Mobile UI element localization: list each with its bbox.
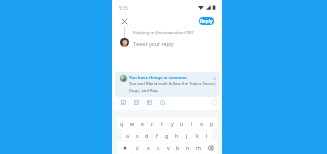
staticText: o (200, 120, 204, 127)
button[interactable]: j (182, 129, 192, 141)
staticText: m (196, 144, 201, 151)
staticText: u (180, 120, 184, 127)
button[interactable]: d (142, 129, 152, 141)
button[interactable]: e (137, 117, 147, 129)
button[interactable]: You have things in common (115, 72, 219, 97)
button[interactable]: a (122, 129, 132, 141)
staticText: f (156, 132, 158, 139)
button[interactable]: k (192, 129, 202, 141)
button[interactable]: Backspace (203, 141, 217, 154)
staticText: You have things in common (129, 75, 187, 81)
button[interactable]: n (183, 141, 193, 154)
button[interactable]: Add photo (119, 98, 128, 107)
staticText: v (167, 144, 170, 151)
button[interactable]: c (153, 141, 163, 154)
button[interactable]: z (132, 141, 143, 154)
button[interactable]: o (197, 117, 207, 129)
staticText: Replying to @mariapoulsen1987 (133, 30, 194, 35)
button[interactable]: q (117, 117, 127, 129)
button[interactable]: m (193, 141, 203, 154)
button[interactable]: v (163, 141, 173, 154)
staticText: i (191, 120, 193, 127)
button[interactable]: x (143, 141, 153, 154)
staticText: Reply (200, 18, 213, 24)
button[interactable]: y (167, 117, 177, 129)
button[interactable]: Dismiss (210, 74, 218, 82)
staticText: n (186, 144, 190, 151)
staticText: s (136, 132, 139, 139)
button[interactable]: Add location (158, 98, 167, 107)
button[interactable]: r (147, 117, 157, 129)
staticText: a (126, 132, 129, 139)
staticText: y (171, 120, 174, 127)
staticText: z (136, 144, 139, 151)
staticText: r (151, 120, 154, 127)
staticText: l (206, 132, 208, 139)
staticText: t (161, 120, 163, 127)
button[interactable]: t (157, 117, 167, 129)
button[interactable]: i (187, 117, 197, 129)
button[interactable]: Shift (117, 141, 132, 154)
button[interactable]: Close (118, 15, 131, 28)
staticText: 5:15 (119, 5, 128, 11)
button[interactable]: b (173, 141, 183, 154)
staticText: b (176, 144, 180, 151)
button[interactable]: s (132, 129, 142, 141)
button[interactable]: Character count (210, 98, 218, 106)
staticText: j (186, 132, 188, 139)
button[interactable]: w (127, 117, 137, 129)
staticText: x (147, 144, 150, 151)
button[interactable]: g (162, 129, 172, 141)
staticText: p (210, 120, 214, 127)
staticText: q (120, 120, 124, 127)
staticText: w (130, 120, 135, 127)
staticText: g (165, 132, 169, 139)
button[interactable]: p (207, 117, 217, 129)
button[interactable]: Add GIF (132, 98, 141, 107)
staticText: c (157, 144, 160, 151)
button[interactable]: f (152, 129, 162, 141)
button[interactable]: Reply (199, 17, 214, 25)
button[interactable]: u (177, 117, 187, 129)
button[interactable]: Add poll (145, 98, 154, 107)
staticText: Tweet your reply (133, 40, 174, 47)
staticText: h (175, 132, 179, 139)
staticText: You and Maria both follow the Topics Soc… (129, 81, 216, 93)
button[interactable]: h (172, 129, 182, 141)
button[interactable]: l (202, 129, 212, 141)
staticText: d (145, 132, 149, 139)
staticText: e (141, 120, 144, 127)
staticText: k (196, 132, 199, 139)
